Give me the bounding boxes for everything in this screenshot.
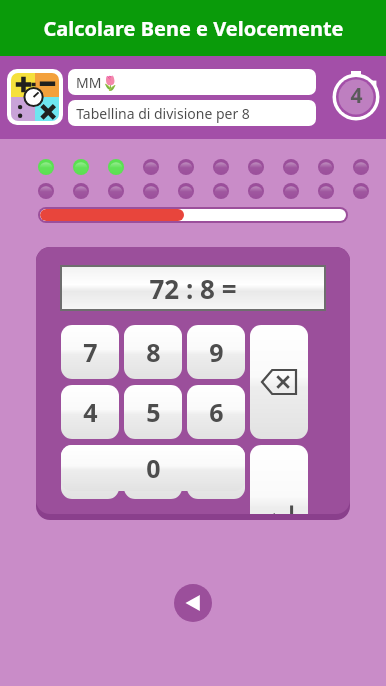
staticText: 4 [83, 395, 98, 429]
staticText: 5 [146, 395, 161, 429]
button[interactable]: 2 [124, 445, 182, 499]
button[interactable]: MM🌷 [68, 69, 316, 95]
button[interactable]: 4 [61, 385, 119, 439]
staticText: 8 [146, 335, 161, 369]
staticText: 9 [209, 335, 224, 369]
button[interactable]: App icon [7, 69, 63, 125]
button[interactable]: 6 [187, 385, 245, 439]
button[interactable]: Back [174, 584, 212, 622]
button[interactable]: Backspace [250, 325, 308, 439]
button[interactable]: 1 [61, 445, 119, 499]
button[interactable]: 3 [187, 445, 245, 499]
staticText: Calcolare Bene e Velocemente [43, 15, 344, 42]
button[interactable]: 8 [124, 325, 182, 379]
button[interactable]: 0 [61, 445, 245, 491]
staticText: 4 [350, 81, 363, 110]
staticText: 1 [83, 455, 98, 489]
button[interactable]: Tabellina di divisione per 8 [68, 100, 316, 126]
staticText: 6 [209, 395, 224, 429]
staticText: 3 [209, 455, 224, 489]
staticText: 2 [146, 455, 161, 489]
staticText: 0 [146, 451, 161, 485]
button[interactable]: Timer [331, 70, 381, 120]
button[interactable]: 9 [187, 325, 245, 379]
staticText: 72 : 8 = [149, 271, 237, 306]
button[interactable]: 5 [124, 385, 182, 439]
button[interactable]: 7 [61, 325, 119, 379]
staticText: MM🌷 [76, 73, 119, 92]
button[interactable]: Enter [250, 445, 308, 514]
staticText: 7 [83, 335, 98, 369]
staticText: Tabellina di divisione per 8 [76, 104, 250, 123]
